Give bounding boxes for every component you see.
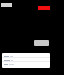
button[interactable] bbox=[2, 58, 50, 62]
button[interactable]: Panel bbox=[34, 40, 49, 46]
button[interactable] bbox=[2, 54, 50, 58]
button[interactable] bbox=[2, 62, 50, 66]
